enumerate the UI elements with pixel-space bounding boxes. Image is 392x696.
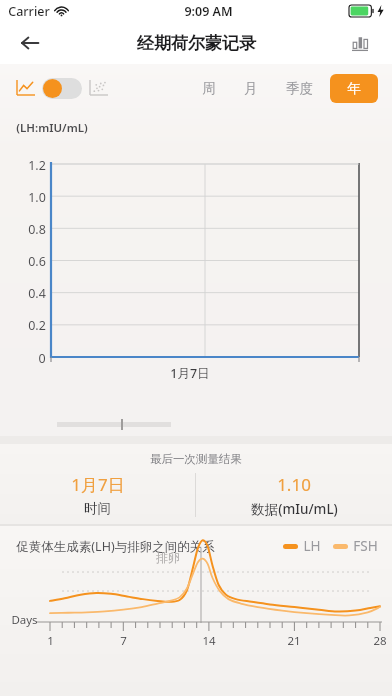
button[interactable]: Back [10,23,50,63]
button[interactable]: 月 [241,74,261,103]
staticText: (LH:mIU/mL) [16,120,88,136]
staticText: 21 [287,633,301,649]
staticText: 最后一次测量结果 [150,452,242,466]
staticText: 数据(mIu/mL) [251,500,338,518]
staticText: FSH [353,537,378,555]
button[interactable]: 季度 [283,74,316,103]
staticText: 1月7日 [170,365,210,382]
staticText: 0.2 [28,317,46,334]
button[interactable]: Toggle chart type [42,78,82,99]
staticText: 7 [120,633,127,649]
staticText: 时间 [84,500,111,517]
button[interactable]: 年 [330,74,378,103]
staticText: 经期荷尔蒙记录 [137,33,256,54]
staticText: 1 [47,633,54,649]
button[interactable]: 周 [199,74,219,103]
staticText: Carrier [8,3,50,20]
staticText: 0.4 [28,285,46,302]
staticText: 年 [347,80,361,97]
staticText: 9:09 AM [184,3,233,20]
staticText: 月 [244,80,258,97]
staticText: 28 [373,633,387,649]
staticText: 周 [202,80,216,97]
staticText: 促黄体生成素(LH)与排卵之间的关系 [16,538,215,555]
staticText: LH [303,537,321,555]
button[interactable]: Statistics [342,23,382,63]
staticText: 季度 [286,80,313,97]
staticText: 14 [202,633,216,649]
staticText: 0.6 [28,253,46,270]
staticText: 1月7日 [71,473,125,496]
staticText: 排卵 [156,550,180,565]
staticText: 1.0 [28,189,46,206]
staticText: 0 [38,350,46,367]
staticText: 1.2 [28,157,46,174]
staticText: Days [11,612,38,628]
staticText: 1.10 [277,473,311,496]
staticText: 0.8 [28,221,46,238]
